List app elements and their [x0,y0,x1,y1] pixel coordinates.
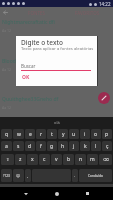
button[interactable]: c [39,154,50,165]
staticText: Aa 12 [2,28,12,33]
button[interactable]: i [80,129,90,139]
button[interactable]: ç [102,141,112,151]
staticText: ç [106,143,109,150]
button[interactable]: h [58,141,68,151]
staticText: FONTES [28,10,45,16]
staticText: a [5,143,8,150]
button[interactable]: d [25,141,35,151]
button[interactable]: f [36,141,46,151]
staticText: r [40,131,43,138]
button[interactable]: k [80,141,90,151]
staticText: h [61,143,65,150]
button[interactable]: Back [0,7,11,18]
staticText: f [40,143,42,150]
staticText: ⌫ [103,157,109,162]
button[interactable]: Back [20,188,31,199]
staticText: p [105,131,109,138]
button[interactable]: p [102,129,112,139]
button[interactable]: ⇧ [1,154,14,165]
button[interactable]: Recents [82,188,93,199]
staticText: Nightmarecraftatic dfi [2,19,56,26]
staticText: l [95,143,97,150]
staticText: . [74,173,76,178]
button[interactable]: v [51,154,62,165]
button[interactable]: OK [19,73,33,82]
staticText: ⇧ [6,157,10,162]
staticText: d [28,143,32,150]
button[interactable]: ?123 [1,169,12,182]
staticText: o [94,131,98,138]
button[interactable]: l [91,141,101,151]
staticText: y [62,131,65,138]
button[interactable]: Quuithghee33Gneho df [2,96,113,110]
staticText: Texto para aplicar a fontes aleatórias [21,46,94,52]
button[interactable]: w [13,129,24,139]
button[interactable]: ☺ [13,169,24,182]
button[interactable]: r [36,129,46,139]
staticText: i [84,131,86,138]
button[interactable]: Bloody text now [2,58,113,72]
staticText: z [19,156,22,163]
staticText: q [5,131,9,138]
button[interactable]: b [63,154,74,165]
staticText: s [17,143,20,150]
staticText: w [17,131,21,138]
staticText: FAVORITOS [75,10,100,16]
button[interactable]: t [47,129,57,139]
button[interactable]: s [13,141,24,151]
staticText: olá [54,120,60,125]
staticText: ?123 [3,174,10,178]
staticText: Aa 12 [2,67,12,72]
button[interactable]: e [25,129,35,139]
staticText: t [51,131,53,138]
staticText: Concluído [88,174,103,178]
staticText: c [43,156,46,163]
staticText: Quuithghee33Gneho df [2,96,59,103]
button[interactable]: n [75,154,86,165]
staticText: Buscar [21,63,36,69]
staticText: g [50,143,54,150]
staticText: 14:22 [99,1,111,7]
staticText: u [72,131,76,138]
staticText: Digite o texto [21,38,63,47]
button[interactable]: o [91,129,101,139]
button[interactable]: FAVORITOS [62,7,113,18]
button[interactable]: Concluído [79,169,112,182]
button[interactable]: x [27,154,38,165]
staticText: e [29,131,32,138]
button[interactable]: . [72,169,78,182]
button[interactable]: Shuffle fonts [98,92,110,104]
staticText: Aa 12 [2,105,12,110]
staticText: v [55,156,58,163]
button[interactable]: a [1,141,12,151]
button[interactable]: z [15,154,26,165]
button[interactable]: y [58,129,68,139]
button[interactable]: Nightmarecraftatic dfi [2,19,113,33]
staticText: ☺ [16,173,21,178]
staticText: m [90,156,95,163]
staticText: n [79,156,83,163]
staticText: b [67,156,71,163]
button[interactable]: Home [51,188,62,199]
staticText: Bloody text now [2,58,41,65]
button[interactable]: q [1,129,12,139]
staticText: OK [22,74,30,81]
button[interactable]: g [47,141,57,151]
button[interactable]: ⌫ [99,154,112,165]
staticText: j [73,143,75,150]
button[interactable]: m [87,154,98,165]
button[interactable]: j [69,141,79,151]
staticText: x [31,156,34,163]
button[interactable]: u [69,129,79,139]
button[interactable]: , [25,169,31,182]
staticText: k [84,143,87,150]
staticText: , [27,173,29,178]
